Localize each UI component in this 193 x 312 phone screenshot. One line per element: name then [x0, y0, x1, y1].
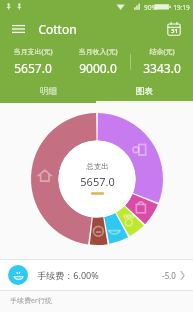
staticText: 19:19 [173, 3, 190, 12]
button[interactable]: 明细 [0, 81, 96, 101]
button[interactable]: 手续费：6.00% [0, 260, 193, 290]
staticText: 结余(元) [149, 47, 175, 57]
staticText: Cotton [38, 21, 77, 37]
staticText: 90% [144, 3, 157, 12]
button[interactable]: Menu [7, 18, 29, 40]
staticText: 当月支出(元) [13, 47, 53, 57]
button[interactable]: 图表 [96, 81, 193, 101]
staticText: 总支出 [86, 162, 109, 171]
staticText: 手续费ег行统 [10, 296, 52, 306]
button[interactable]: 当月支出(元) [0, 47, 65, 76]
staticText: 图表 [136, 86, 153, 97]
staticText: 3343.0 [143, 60, 181, 76]
staticText: 手续费：6.00% [37, 269, 99, 281]
button[interactable]: 当月收入(元) [65, 47, 130, 76]
staticText: 9000.0 [79, 60, 117, 76]
staticText: 明细 [40, 86, 57, 97]
staticText: 31 [171, 27, 178, 35]
button[interactable]: 结余(元) [131, 47, 193, 76]
staticText: 5657.0 [14, 60, 52, 76]
staticText: -5.0 [162, 270, 176, 281]
staticText: 当月收入(元) [78, 47, 118, 57]
button[interactable]: Calendar [163, 18, 185, 40]
staticText: 5657.0 [80, 174, 115, 189]
